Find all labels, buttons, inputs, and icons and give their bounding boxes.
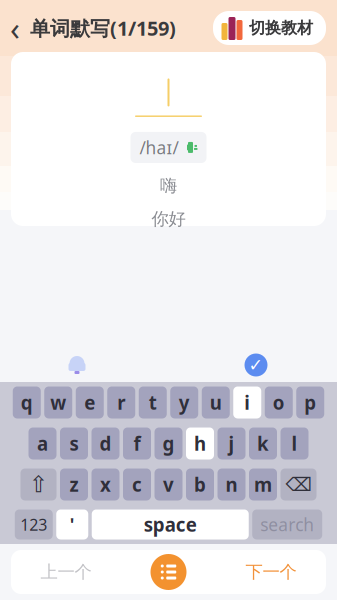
button[interactable]: Hint [62,350,92,380]
button[interactable]: b [186,468,214,500]
staticText: w [50,390,66,415]
staticText: 上一个 [40,561,91,583]
button[interactable]: o [265,386,293,418]
staticText: j [228,431,234,456]
staticText: ‹ [10,7,20,49]
staticText: ' [70,513,75,536]
button[interactable]: u [202,386,230,418]
staticText: space [144,512,197,537]
button[interactable]: Play pronunciation [130,132,206,163]
button[interactable]: f [123,427,151,459]
button[interactable]: a [28,427,56,459]
button[interactable]: v [154,468,182,500]
staticText: e [84,390,95,415]
staticText: p [304,390,316,415]
staticText: x [100,472,111,497]
staticText: i [244,390,250,415]
staticText: t [149,390,157,415]
staticText: ✓ [248,355,263,375]
button[interactable]: c [123,468,151,500]
staticText: s [69,431,78,456]
button[interactable]: Confirm [241,350,271,380]
button[interactable]: search [252,509,322,539]
button[interactable]: 切换教材 [213,11,326,45]
staticText: h [194,431,206,456]
staticText: b [194,472,206,497]
button[interactable]: s [60,427,88,459]
button[interactable]: Word list [146,550,190,594]
button[interactable]: h [186,427,214,459]
button[interactable]: Shift [20,468,56,500]
staticText: m [254,472,272,497]
button[interactable]: q [13,386,41,418]
staticText: g [162,431,174,456]
staticText: 嗨 [160,175,177,196]
staticText: q [21,390,33,415]
button[interactable]: k [249,427,277,459]
staticText: ⌫ [285,474,311,495]
button[interactable]: l [280,427,308,459]
button[interactable]: x [91,468,119,500]
button[interactable]: y [170,386,198,418]
button[interactable]: Apostrophe [56,509,88,539]
button[interactable]: z [60,468,88,500]
staticText: d [99,431,111,456]
staticText: o [273,390,285,415]
staticText: u [210,390,222,415]
staticText: 123 [20,514,47,535]
button[interactable]: g [154,427,182,459]
staticText: search [260,513,314,536]
button[interactable]: 上一个 [11,550,121,594]
staticText: r [117,390,125,415]
staticText: ⇧ [29,472,48,497]
staticText: v [163,472,174,497]
staticText: k [257,431,269,456]
staticText: a [37,431,48,456]
staticText: y [179,390,190,415]
button[interactable]: 下一个 [216,550,326,594]
button[interactable]: Back [0,11,30,45]
staticText: /haɪ/ [139,136,178,159]
staticText: f [133,431,140,456]
button[interactable]: space [92,509,249,539]
staticText: 单词默写(1/159) [30,15,176,41]
staticText: 你好 [151,208,185,230]
button[interactable]: r [107,386,135,418]
button[interactable]: 123 [15,509,53,539]
button[interactable]: e [76,386,104,418]
button[interactable]: j [217,427,245,459]
button[interactable]: w [44,386,72,418]
button[interactable]: n [217,468,245,500]
staticText: z [69,472,78,497]
button[interactable]: m [249,468,277,500]
button[interactable]: p [296,386,324,418]
staticText: n [225,472,237,497]
button[interactable]: t [139,386,167,418]
staticText: 切换教材 [249,18,313,38]
button[interactable]: Delete [280,468,316,500]
staticText: 下一个 [245,561,296,583]
staticText: c [132,472,142,497]
button[interactable]: d [91,427,119,459]
staticText: l [291,431,297,456]
button[interactable]: i [233,386,261,418]
